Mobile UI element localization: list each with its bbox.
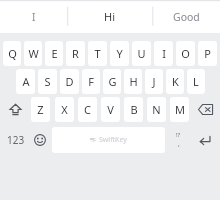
button[interactable]: Q <box>3 41 21 66</box>
button[interactable]: W <box>24 41 42 66</box>
button[interactable]: P <box>198 41 217 66</box>
staticText: O <box>181 46 190 61</box>
staticText: P <box>204 46 211 61</box>
staticText: V <box>107 102 114 117</box>
staticText: !? <box>176 131 181 139</box>
button[interactable]: Good <box>152 0 220 33</box>
button[interactable]: M <box>170 97 189 122</box>
staticText: U <box>137 46 146 61</box>
button[interactable]: V <box>101 97 120 122</box>
staticText: M <box>175 102 185 117</box>
button[interactable]: H <box>124 69 142 94</box>
staticText: D <box>65 74 74 89</box>
staticText: N <box>152 102 161 117</box>
button[interactable]: I <box>154 41 173 66</box>
button[interactable]: L <box>187 69 205 94</box>
staticText: C <box>84 102 91 117</box>
staticText: W <box>28 46 39 61</box>
staticText: I <box>162 46 166 61</box>
button[interactable]: I <box>0 0 67 33</box>
staticText: H <box>129 74 138 89</box>
button[interactable]: Backspace <box>193 97 217 122</box>
button[interactable]: E <box>45 41 63 66</box>
button[interactable]: Y <box>110 41 129 66</box>
staticText: Q <box>8 46 17 61</box>
staticText: G <box>108 74 117 89</box>
button[interactable]: R <box>66 41 85 66</box>
button[interactable]: U <box>132 41 151 66</box>
staticText: L <box>193 74 199 89</box>
staticText: I <box>32 10 36 24</box>
button[interactable]: Enter <box>191 127 217 153</box>
button[interactable]: Shift <box>3 97 28 122</box>
button[interactable]: T <box>88 41 107 66</box>
button[interactable]: Space <box>52 127 165 153</box>
staticText: J <box>152 74 156 89</box>
staticText: T <box>94 46 101 61</box>
staticText: 123 <box>7 133 25 147</box>
button[interactable]: C <box>78 97 97 122</box>
button[interactable]: N <box>147 97 166 122</box>
staticText: R <box>72 46 79 61</box>
button[interactable]: Hi <box>67 0 152 33</box>
staticText: Good <box>173 10 200 24</box>
button[interactable]: Emoji <box>30 127 50 153</box>
button[interactable]: O <box>176 41 195 66</box>
staticText: Y <box>116 46 123 61</box>
button[interactable]: X <box>55 97 74 122</box>
button[interactable]: J <box>145 69 163 94</box>
button[interactable]: K <box>166 69 184 94</box>
button[interactable]: Z <box>31 97 50 122</box>
staticText: , <box>178 139 180 149</box>
staticText: K <box>172 74 179 89</box>
staticText: SwiftKey <box>99 135 127 145</box>
button[interactable]: B <box>124 97 143 122</box>
button[interactable]: S <box>38 69 57 94</box>
button[interactable]: D <box>60 69 79 94</box>
staticText: Hi <box>104 9 115 24</box>
staticText: X <box>61 102 68 117</box>
button[interactable]: F <box>82 69 100 94</box>
staticText: F <box>88 74 94 89</box>
button[interactable]: A <box>16 69 35 94</box>
staticText: Z <box>37 102 44 117</box>
staticText: B <box>130 102 138 117</box>
button[interactable]: G <box>103 69 121 94</box>
staticText: S <box>44 74 51 89</box>
staticText: E <box>51 46 58 61</box>
button[interactable]: 123 <box>3 127 28 153</box>
button[interactable]: Punctuation <box>167 127 189 153</box>
staticText: A <box>22 74 30 89</box>
